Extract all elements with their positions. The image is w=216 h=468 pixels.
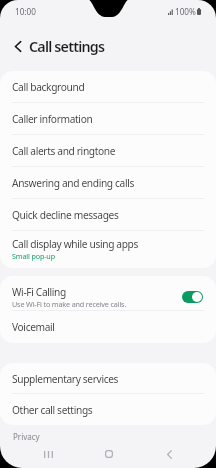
staticText: Answering and ending calls <box>12 176 135 190</box>
staticText: Call settings <box>29 37 105 56</box>
staticText: Caller information <box>12 112 93 126</box>
staticText: Other call settings <box>12 403 93 417</box>
button[interactable]: Back <box>6 35 29 58</box>
button[interactable]: Wi-Fi Calling <box>0 276 216 311</box>
button[interactable]: Recent apps <box>34 440 62 468</box>
staticText: Use Wi-Fi to make and receive calls. <box>12 299 127 309</box>
button[interactable]: Wi-Fi Calling toggle <box>182 291 203 303</box>
staticText: Privacy <box>13 431 40 442</box>
staticText: Small pop-up <box>12 251 55 261</box>
button[interactable]: Caller information <box>0 103 216 135</box>
button[interactable]: Call alerts and ringtone <box>0 135 216 167</box>
staticText: 100% <box>175 6 196 17</box>
staticText: Call alerts and ringtone <box>12 144 116 158</box>
button[interactable]: Other call settings <box>0 394 216 425</box>
button[interactable]: Call background <box>0 71 216 103</box>
staticText: 10:00 <box>15 6 36 17</box>
button[interactable]: Voicemail <box>0 311 216 343</box>
staticText: Call display while using apps <box>12 237 139 251</box>
button[interactable]: Supplementary services <box>0 363 216 394</box>
button[interactable]: Answering and ending calls <box>0 167 216 199</box>
button[interactable]: Back <box>155 440 183 468</box>
button[interactable]: Home <box>95 440 123 468</box>
staticText: Call background <box>12 80 85 94</box>
staticText: Wi-Fi Calling <box>12 285 66 299</box>
button[interactable]: Call display while using apps <box>0 231 216 268</box>
staticText: Voicemail <box>12 320 55 334</box>
staticText: Supplementary services <box>12 372 119 386</box>
button[interactable]: Quick decline messages <box>0 199 216 231</box>
staticText: Quick decline messages <box>12 208 119 222</box>
